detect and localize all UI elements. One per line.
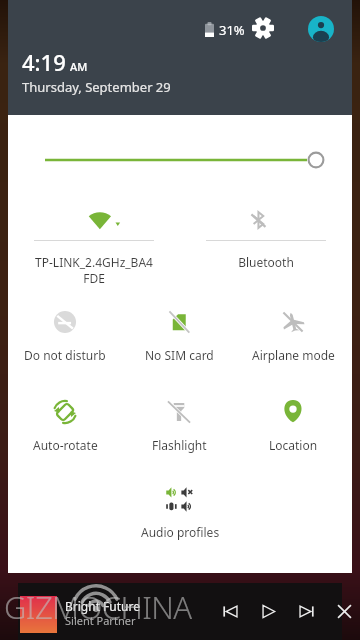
- staticText: GIZMOCHINA: [4, 586, 192, 628]
- staticText: Silent Partner: [65, 613, 136, 628]
- staticText: Audio profiles: [141, 524, 220, 540]
- staticText: Auto-rotate: [33, 437, 98, 453]
- button[interactable]: Audio profiles: [135, 486, 225, 540]
- staticText: Flashlight: [152, 437, 207, 453]
- staticText: No SIM card: [145, 347, 214, 363]
- staticText: AM: [70, 59, 88, 74]
- staticText: Bright Future: [65, 598, 140, 614]
- button[interactable]: Bluetooth: [180, 205, 352, 295]
- button[interactable]: Close: [328, 595, 360, 627]
- button[interactable]: Play: [252, 595, 284, 627]
- button[interactable]: Location: [236, 400, 350, 453]
- button[interactable]: Flashlight: [122, 400, 236, 453]
- staticText: Location: [269, 437, 318, 453]
- button[interactable]: Settings: [248, 13, 278, 43]
- button[interactable]: Next: [290, 595, 322, 627]
- button[interactable]: No SIM card: [122, 310, 236, 363]
- button[interactable]: Do not disturb: [8, 310, 122, 363]
- staticText: Bluetooth: [238, 254, 294, 270]
- staticText: Do not disturb: [24, 347, 106, 363]
- staticText: TP-LINK_2.4GHz_BA4 FDE: [35, 254, 153, 286]
- staticText: 4:19: [22, 47, 66, 77]
- button[interactable]: Brightness: [8, 140, 352, 180]
- button[interactable]: TP-LINK_2.4GHz_BA4 FDE: [8, 205, 180, 295]
- button[interactable]: User profile: [308, 16, 334, 42]
- staticText: 31%: [219, 21, 245, 39]
- staticText: Airplane mode: [252, 347, 335, 363]
- button[interactable]: Airplane mode: [236, 310, 350, 363]
- button[interactable]: Previous: [214, 595, 246, 627]
- staticText: Thursday, September 29: [22, 78, 171, 96]
- button[interactable]: Auto-rotate: [8, 400, 122, 453]
